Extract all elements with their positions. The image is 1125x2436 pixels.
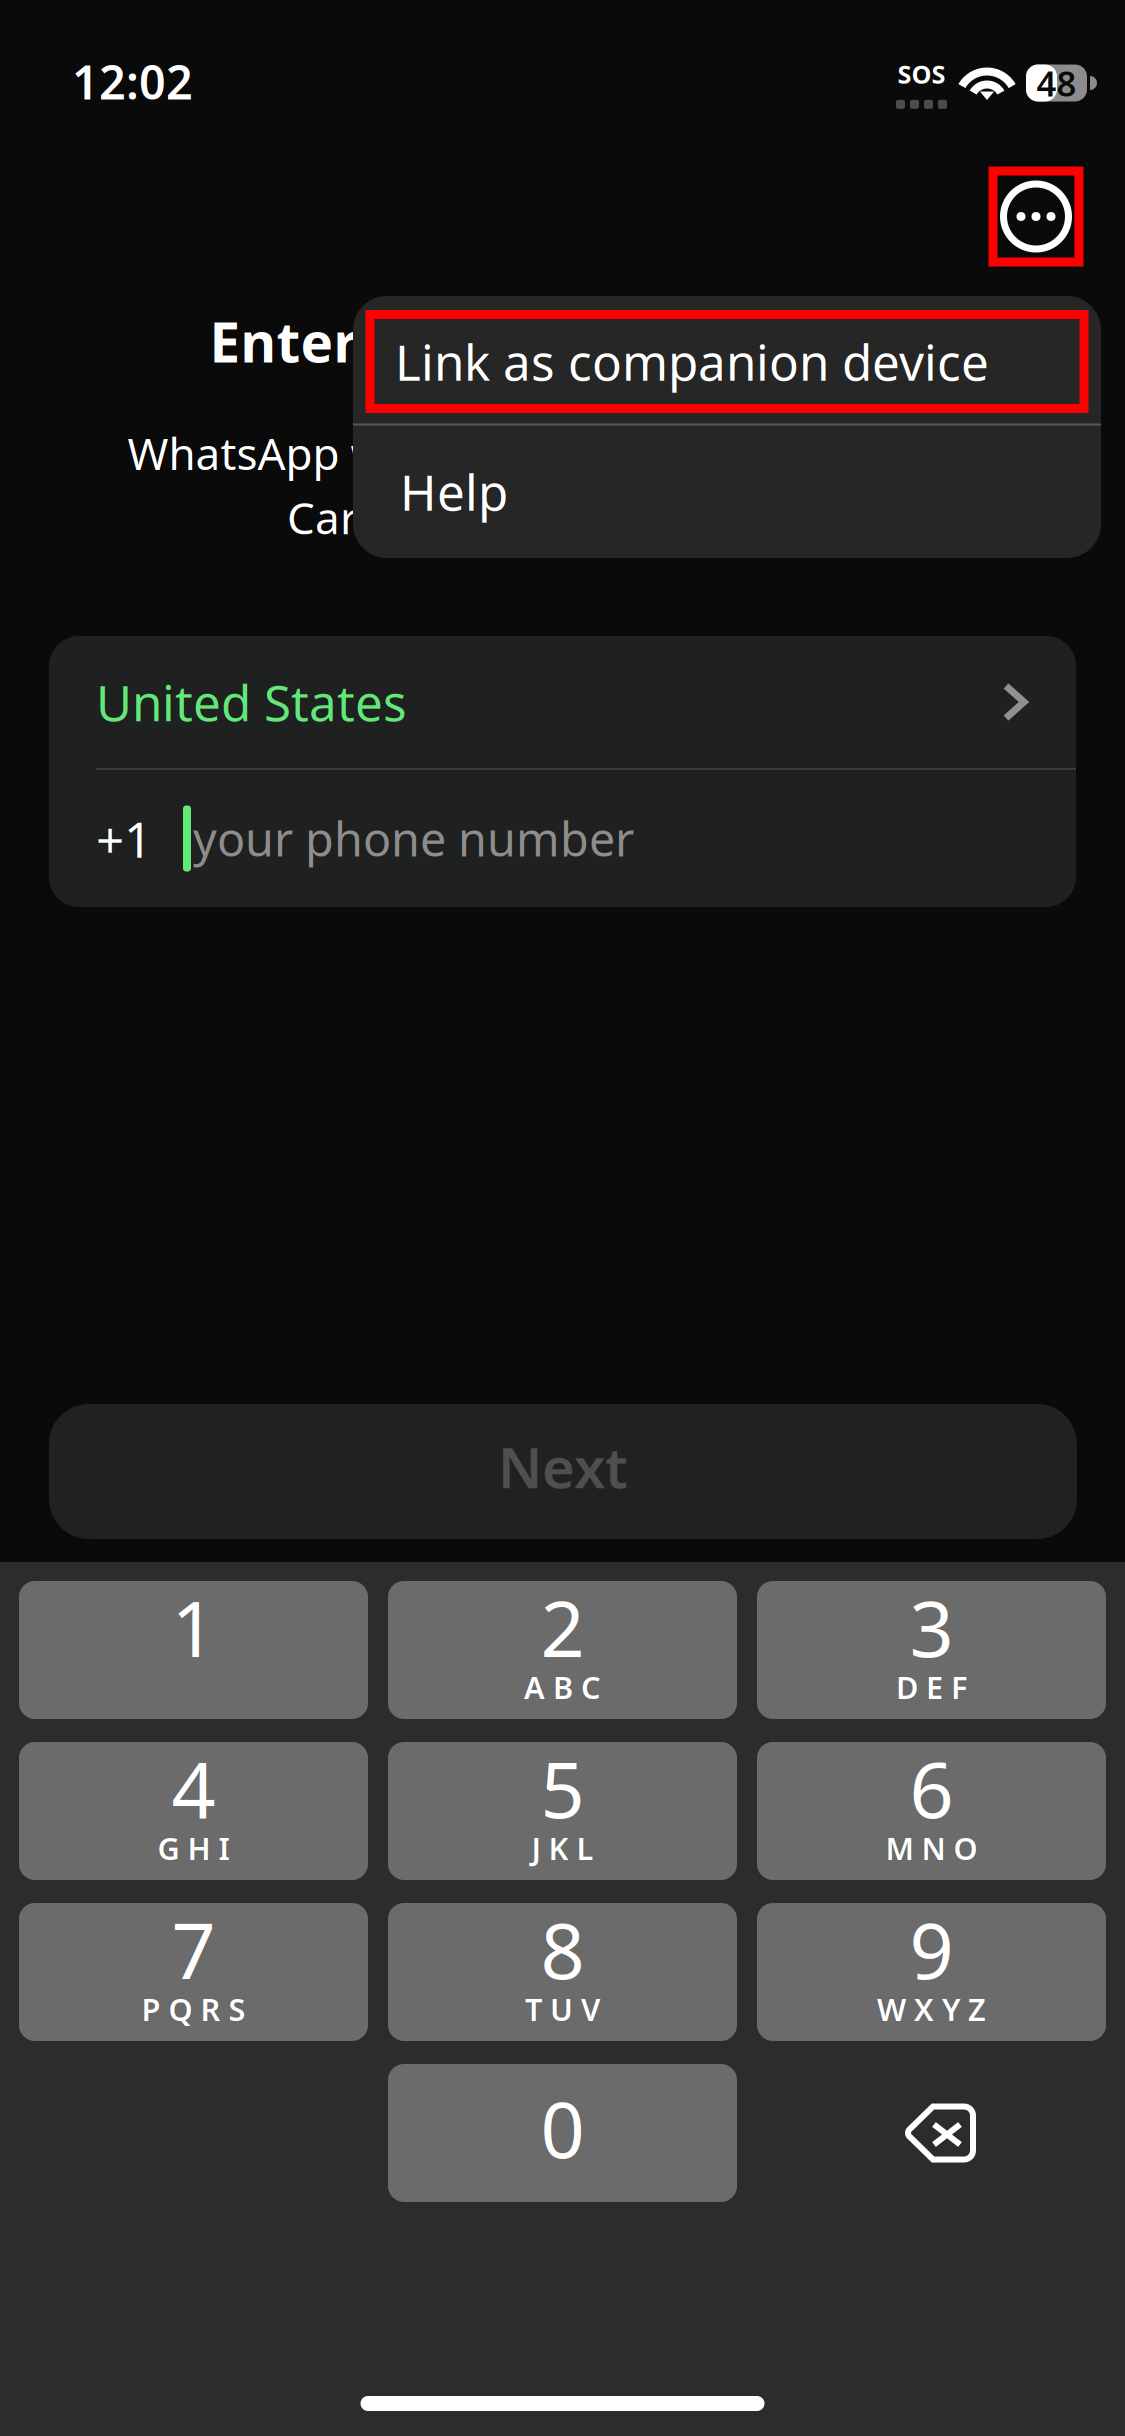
staticText: J K L: [531, 1828, 593, 1868]
staticText: your phone number: [193, 807, 634, 869]
staticText: 1: [171, 1576, 215, 1678]
button[interactable]: 6: [757, 1742, 1106, 1880]
staticText: +1: [96, 806, 152, 871]
staticText: 48: [1036, 60, 1076, 106]
staticText: P Q R S: [141, 1989, 245, 2029]
staticText: Carrier charges may apply.: [287, 488, 838, 546]
button[interactable]: 7: [19, 1903, 368, 2041]
staticText: United States: [96, 669, 407, 735]
staticText: W X Y Z: [877, 1989, 986, 2029]
button[interactable]: More options: [993, 171, 1079, 262]
staticText: WhatsApp will need to verify your number…: [127, 424, 997, 482]
staticText: 7: [171, 1898, 215, 2000]
staticText: Help: [400, 459, 508, 524]
staticText: M N O: [885, 1828, 977, 1868]
button[interactable]: 8: [388, 1903, 737, 2041]
button[interactable]: 5: [388, 1742, 737, 1880]
staticText: 5: [540, 1737, 584, 1839]
staticText: 2: [540, 1576, 584, 1678]
button[interactable]: 3: [757, 1581, 1106, 1719]
staticText: A B C: [524, 1667, 601, 1707]
staticText: 6: [909, 1737, 953, 1839]
staticText: Next: [498, 1429, 628, 1504]
button[interactable]: Next: [49, 1404, 1077, 1539]
staticText: Link as companion device: [395, 329, 989, 394]
staticText: 0: [540, 2077, 584, 2179]
button[interactable]: Link as companion device: [370, 314, 1084, 408]
button[interactable]: Help: [353, 425, 1101, 557]
button[interactable]: United States: [49, 636, 1076, 768]
button[interactable]: 9: [757, 1903, 1106, 2041]
staticText: 3: [909, 1576, 953, 1678]
staticText: 4: [171, 1737, 215, 1839]
button[interactable]: 2: [388, 1581, 737, 1719]
staticText: T U V: [525, 1989, 600, 2029]
staticText: SOS: [897, 57, 945, 91]
button[interactable]: +1: [49, 770, 1076, 907]
staticText: G H I: [157, 1828, 229, 1868]
staticText: 8: [540, 1898, 584, 2000]
staticText: 9: [909, 1898, 953, 2000]
staticText: D E F: [896, 1667, 967, 1707]
button[interactable]: 1: [19, 1581, 368, 1719]
button[interactable]: Delete: [757, 2064, 1106, 2202]
staticText: Enter your phone number: [209, 305, 915, 378]
staticText: 12:02: [72, 50, 193, 112]
button[interactable]: 0: [388, 2064, 737, 2202]
button[interactable]: 4: [19, 1742, 368, 1880]
